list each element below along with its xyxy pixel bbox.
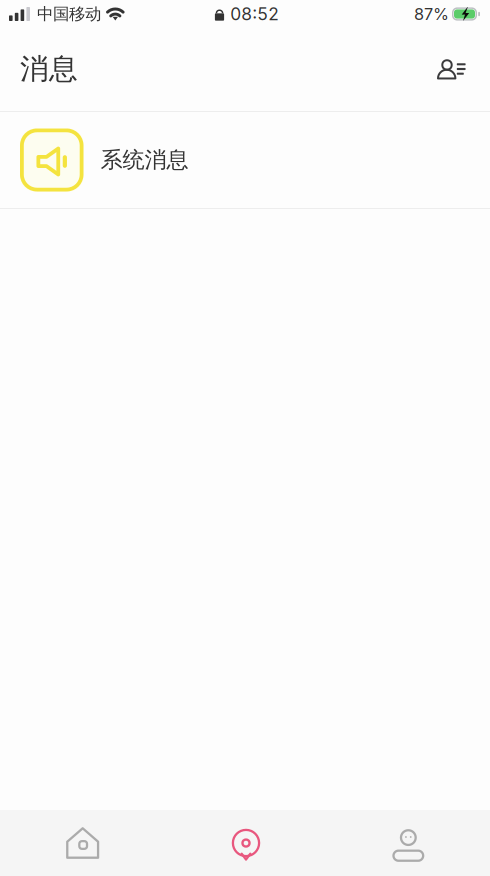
staticText: 中国移动 (37, 4, 101, 24)
staticText: 08:52 (230, 3, 279, 24)
button[interactable]: 首页 (0, 810, 163, 876)
button[interactable]: 系统消息 (0, 112, 490, 208)
button[interactable]: 发现 (163, 810, 327, 876)
staticText: 系统消息 (100, 146, 188, 174)
button[interactable]: 我的 (327, 810, 490, 876)
staticText: 87% (414, 4, 449, 24)
button[interactable]: 联系人 (422, 47, 469, 91)
staticText: 消息 (20, 51, 78, 87)
